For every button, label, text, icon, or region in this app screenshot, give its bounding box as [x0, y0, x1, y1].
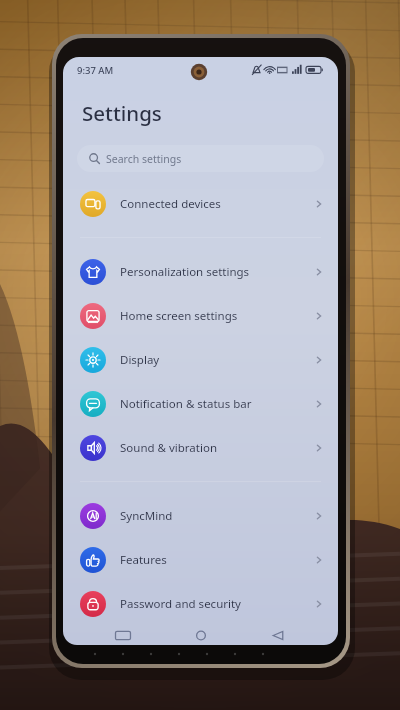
button[interactable]: Connected devices	[63, 182, 338, 226]
button[interactable]: Sound & vibration	[63, 426, 338, 470]
button[interactable]: SyncMind	[63, 494, 338, 538]
staticText: SyncMind	[120, 508, 173, 524]
staticText: Display	[120, 352, 160, 368]
staticText: Home screen settings	[120, 308, 238, 324]
button[interactable]: Display	[63, 338, 338, 382]
staticText: Notification & status bar	[120, 396, 252, 412]
button[interactable]: Home screen settings	[63, 294, 338, 338]
button[interactable]: Personalization settings	[63, 250, 338, 294]
button[interactable]: Password and security	[63, 582, 338, 626]
button[interactable]: Back	[261, 626, 295, 645]
staticText: Sound & vibration	[120, 440, 217, 456]
button[interactable]: Notification & status bar	[63, 382, 338, 426]
button[interactable]: Home	[184, 626, 218, 645]
staticText: Password and security	[120, 596, 241, 612]
staticText: Search settings	[106, 152, 182, 166]
button[interactable]: Features	[63, 538, 338, 582]
staticText: 9:37 AM	[77, 64, 114, 77]
button[interactable]: Search settings	[77, 145, 324, 172]
staticText: Settings	[82, 99, 162, 127]
staticText: Personalization settings	[120, 264, 250, 280]
button[interactable]: Recents	[106, 626, 140, 645]
staticText: Features	[120, 552, 167, 568]
staticText: Connected devices	[120, 196, 221, 212]
